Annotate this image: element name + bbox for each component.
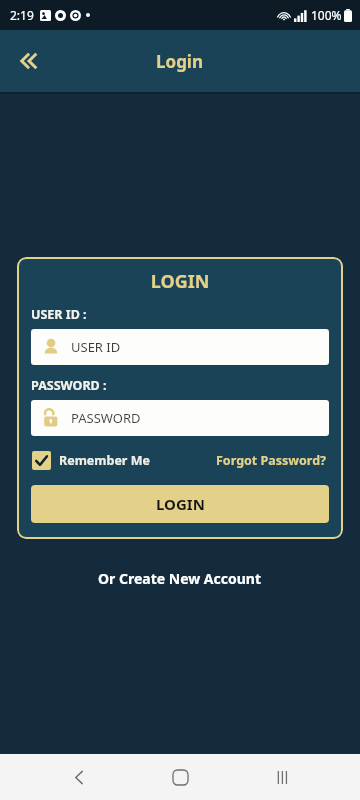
button[interactable]: Home bbox=[157, 754, 203, 800]
button[interactable]: Forgot Password? bbox=[214, 448, 329, 473]
staticText: Remember Me bbox=[59, 452, 150, 469]
staticText: Forgot Password? bbox=[216, 452, 327, 469]
staticText: 2:19 bbox=[10, 7, 34, 23]
button[interactable]: LOGIN bbox=[31, 485, 329, 523]
staticText: PASSWORD : bbox=[31, 377, 107, 394]
button[interactable]: Or Create New Account bbox=[0, 563, 360, 594]
staticText: USER ID : bbox=[31, 306, 87, 323]
button[interactable]: PASSWORD bbox=[31, 400, 329, 436]
staticText: LOGIN bbox=[156, 494, 205, 514]
button[interactable]: Recent apps bbox=[259, 754, 305, 800]
button[interactable]: USER ID bbox=[31, 329, 329, 365]
button[interactable]: Remember Me bbox=[31, 448, 151, 473]
staticText: Login bbox=[156, 50, 204, 73]
staticText: USER ID bbox=[71, 338, 121, 356]
staticText: 100% bbox=[311, 7, 342, 23]
staticText: PASSWORD bbox=[71, 409, 141, 427]
button[interactable]: Back bbox=[6, 39, 50, 83]
button[interactable]: Back bbox=[56, 754, 102, 800]
staticText: Or Create New Account bbox=[98, 569, 262, 588]
staticText: LOGIN bbox=[31, 269, 329, 294]
